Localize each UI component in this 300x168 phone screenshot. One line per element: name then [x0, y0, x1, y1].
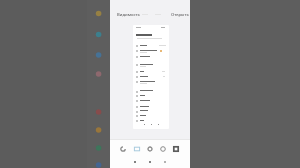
button[interactable]: Edit: [145, 144, 155, 154]
button[interactable]: Screenshot: [132, 144, 142, 154]
button[interactable]: Recents: [160, 157, 170, 167]
button[interactable]: Settings: [158, 144, 168, 154]
button[interactable]: Видимость: [117, 12, 140, 18]
button[interactable]: Back: [130, 157, 140, 167]
button[interactable]: Lock: [118, 144, 128, 154]
button[interactable]: Capture: [171, 144, 181, 154]
button[interactable]: Home: [145, 157, 155, 167]
button[interactable]: Открыть: [171, 12, 189, 18]
